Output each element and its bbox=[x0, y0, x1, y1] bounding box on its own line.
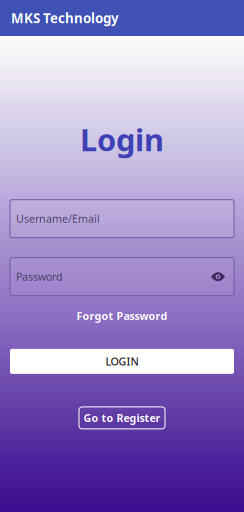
staticText: MKS Technology bbox=[11, 9, 119, 27]
staticText: Username/Email bbox=[16, 212, 100, 226]
staticText: LOGIN bbox=[105, 354, 138, 368]
button[interactable]: Forgot Password bbox=[68, 305, 175, 327]
button[interactable]: Go to Register bbox=[79, 407, 165, 429]
button[interactable]: LOGIN bbox=[0, 349, 244, 374]
staticText: Go to Register bbox=[83, 411, 160, 425]
button[interactable]: Show password bbox=[206, 265, 230, 289]
staticText: Login bbox=[80, 119, 164, 160]
staticText: Forgot Password bbox=[76, 309, 167, 323]
staticText: Password bbox=[16, 270, 63, 284]
